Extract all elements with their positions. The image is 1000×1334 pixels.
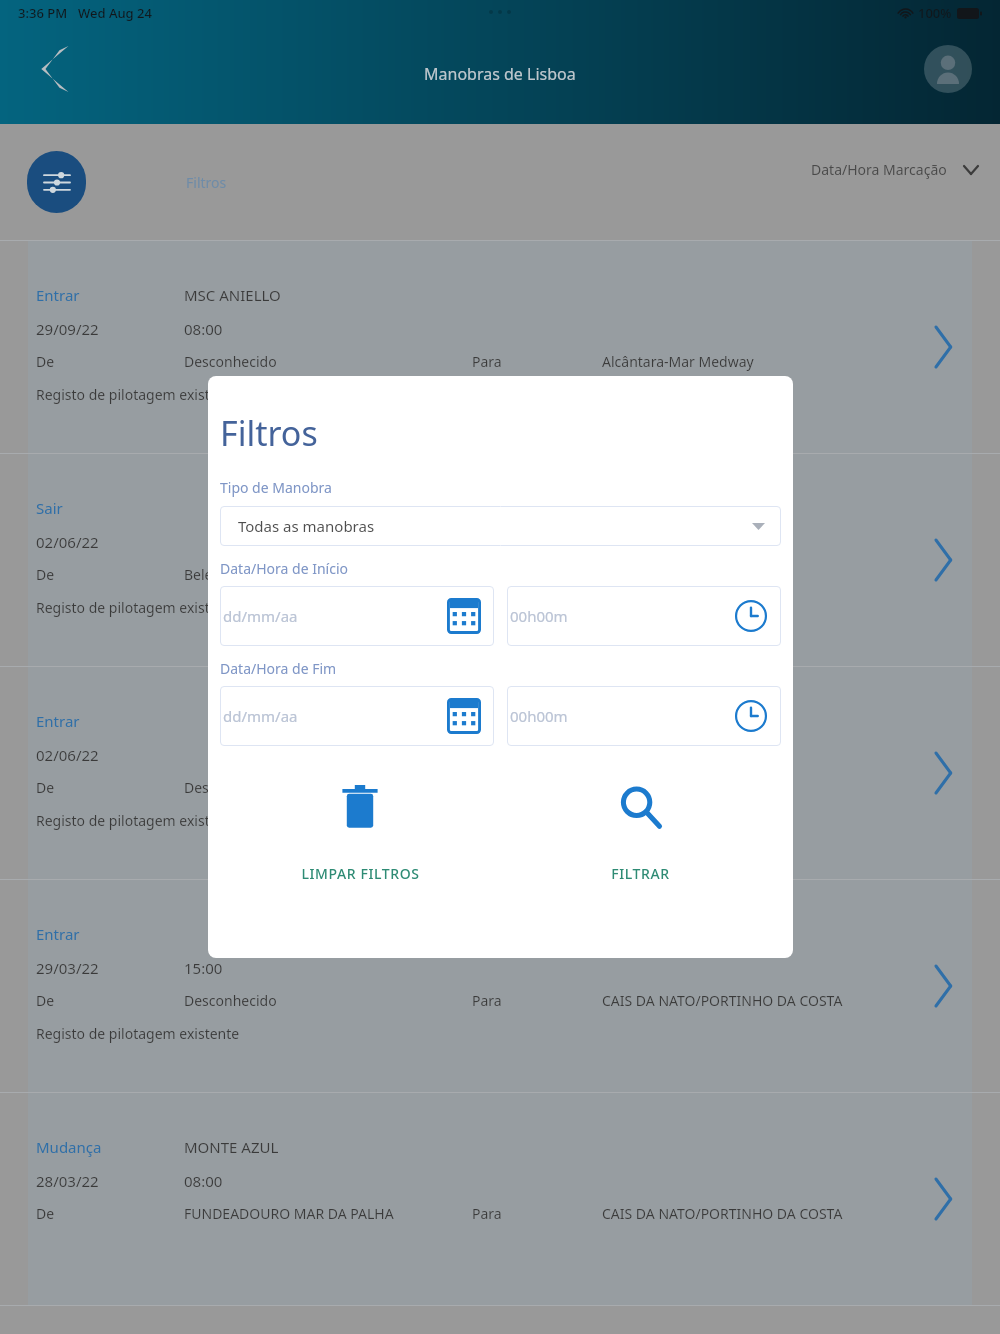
button[interactable]: Pick time xyxy=(507,686,781,746)
staticText: De xyxy=(36,778,184,797)
button[interactable]: Entrar xyxy=(28,880,972,1092)
staticText: 00h00m xyxy=(510,606,568,626)
staticText: Entrar xyxy=(36,285,184,305)
button[interactable]: FILTRAR xyxy=(500,776,781,887)
staticText: CAIS DA NATO/PORTINHO DA COSTA xyxy=(602,1204,843,1223)
staticText: Entrar xyxy=(36,711,184,731)
staticText: Desconhecido xyxy=(184,991,472,1010)
button[interactable]: Todas as manobras xyxy=(220,506,781,546)
staticText: dd/mm/aa xyxy=(223,606,298,626)
staticText: Registo de pilotagem existente xyxy=(36,385,240,404)
button[interactable]: Profile xyxy=(924,45,972,93)
staticText: 28/03/22 xyxy=(36,1171,184,1191)
staticText: Data/Hora de Fim xyxy=(220,659,337,678)
staticText: Manobras de Lisboa xyxy=(424,63,576,85)
staticText: 15:00 xyxy=(184,958,223,978)
staticText: Belé xyxy=(184,565,472,584)
button[interactable]: Back xyxy=(24,38,86,100)
button[interactable]: Pick date xyxy=(220,586,494,646)
staticText: De xyxy=(36,991,184,1010)
staticText: Tipo de Manobra xyxy=(220,478,332,497)
staticText: 100% xyxy=(918,4,952,22)
button[interactable]: Entrar xyxy=(28,667,972,879)
staticText: Entrar xyxy=(36,924,184,944)
staticText: Mudança xyxy=(36,1137,184,1157)
staticText: Registo de pilotagem existente xyxy=(36,598,240,617)
staticText: Para xyxy=(472,1204,602,1223)
staticText: CAIS DA NATO/PORTINHO DA COSTA xyxy=(602,991,843,1010)
staticText: Filtros xyxy=(186,173,227,192)
staticText: Registo de pilotagem existente xyxy=(36,811,240,830)
staticText: Desc xyxy=(184,778,472,797)
staticText: Para xyxy=(472,352,602,371)
staticText: Wed Aug 24 xyxy=(78,4,152,22)
button[interactable]: Open filters xyxy=(27,151,86,213)
staticText: MSC ANIELLO xyxy=(184,285,281,305)
staticText: dd/mm/aa xyxy=(223,706,298,726)
staticText: 29/03/22 xyxy=(36,958,184,978)
staticText: FUNDEADOURO MAR DA PALHA xyxy=(184,1204,472,1223)
staticText: 02/06/22 xyxy=(36,745,184,765)
staticText: Desconhecido xyxy=(184,352,472,371)
staticText: De xyxy=(36,352,184,371)
staticText: Filtros xyxy=(220,410,318,456)
staticText: De xyxy=(36,1204,184,1223)
staticText: Data/Hora de Início xyxy=(220,559,348,578)
button[interactable]: Entrar xyxy=(28,241,972,453)
staticText: Data/Hora Marcação xyxy=(811,160,947,179)
staticText: Alcântara-Mar Medway xyxy=(602,352,754,371)
staticText: 08:00 xyxy=(184,319,223,339)
staticText: 08:00 xyxy=(184,1171,223,1191)
staticText: Todas as manobras xyxy=(238,516,375,536)
button[interactable]: Pick date xyxy=(220,686,494,746)
staticText: MONTE AZUL xyxy=(184,1137,279,1157)
staticText: Para xyxy=(472,991,602,1010)
button[interactable]: Pick time xyxy=(507,586,781,646)
button[interactable]: Data/Hora Marcação xyxy=(811,160,978,179)
staticText: De xyxy=(36,565,184,584)
staticText: 29/09/22 xyxy=(36,319,184,339)
staticText: Sair xyxy=(36,498,184,518)
button[interactable]: Mudança xyxy=(28,1093,972,1305)
staticText: 3:36 PM xyxy=(18,4,68,22)
button[interactable]: Sair xyxy=(28,454,972,666)
staticText: 02/06/22 xyxy=(36,532,184,552)
staticText: Registo de pilotagem existente xyxy=(36,1024,240,1043)
staticText: 00h00m xyxy=(510,706,568,726)
staticText: LIMPAR FILTROS xyxy=(301,864,420,883)
button[interactable]: LIMPAR FILTROS xyxy=(220,776,500,887)
staticText: FILTRAR xyxy=(611,864,670,883)
